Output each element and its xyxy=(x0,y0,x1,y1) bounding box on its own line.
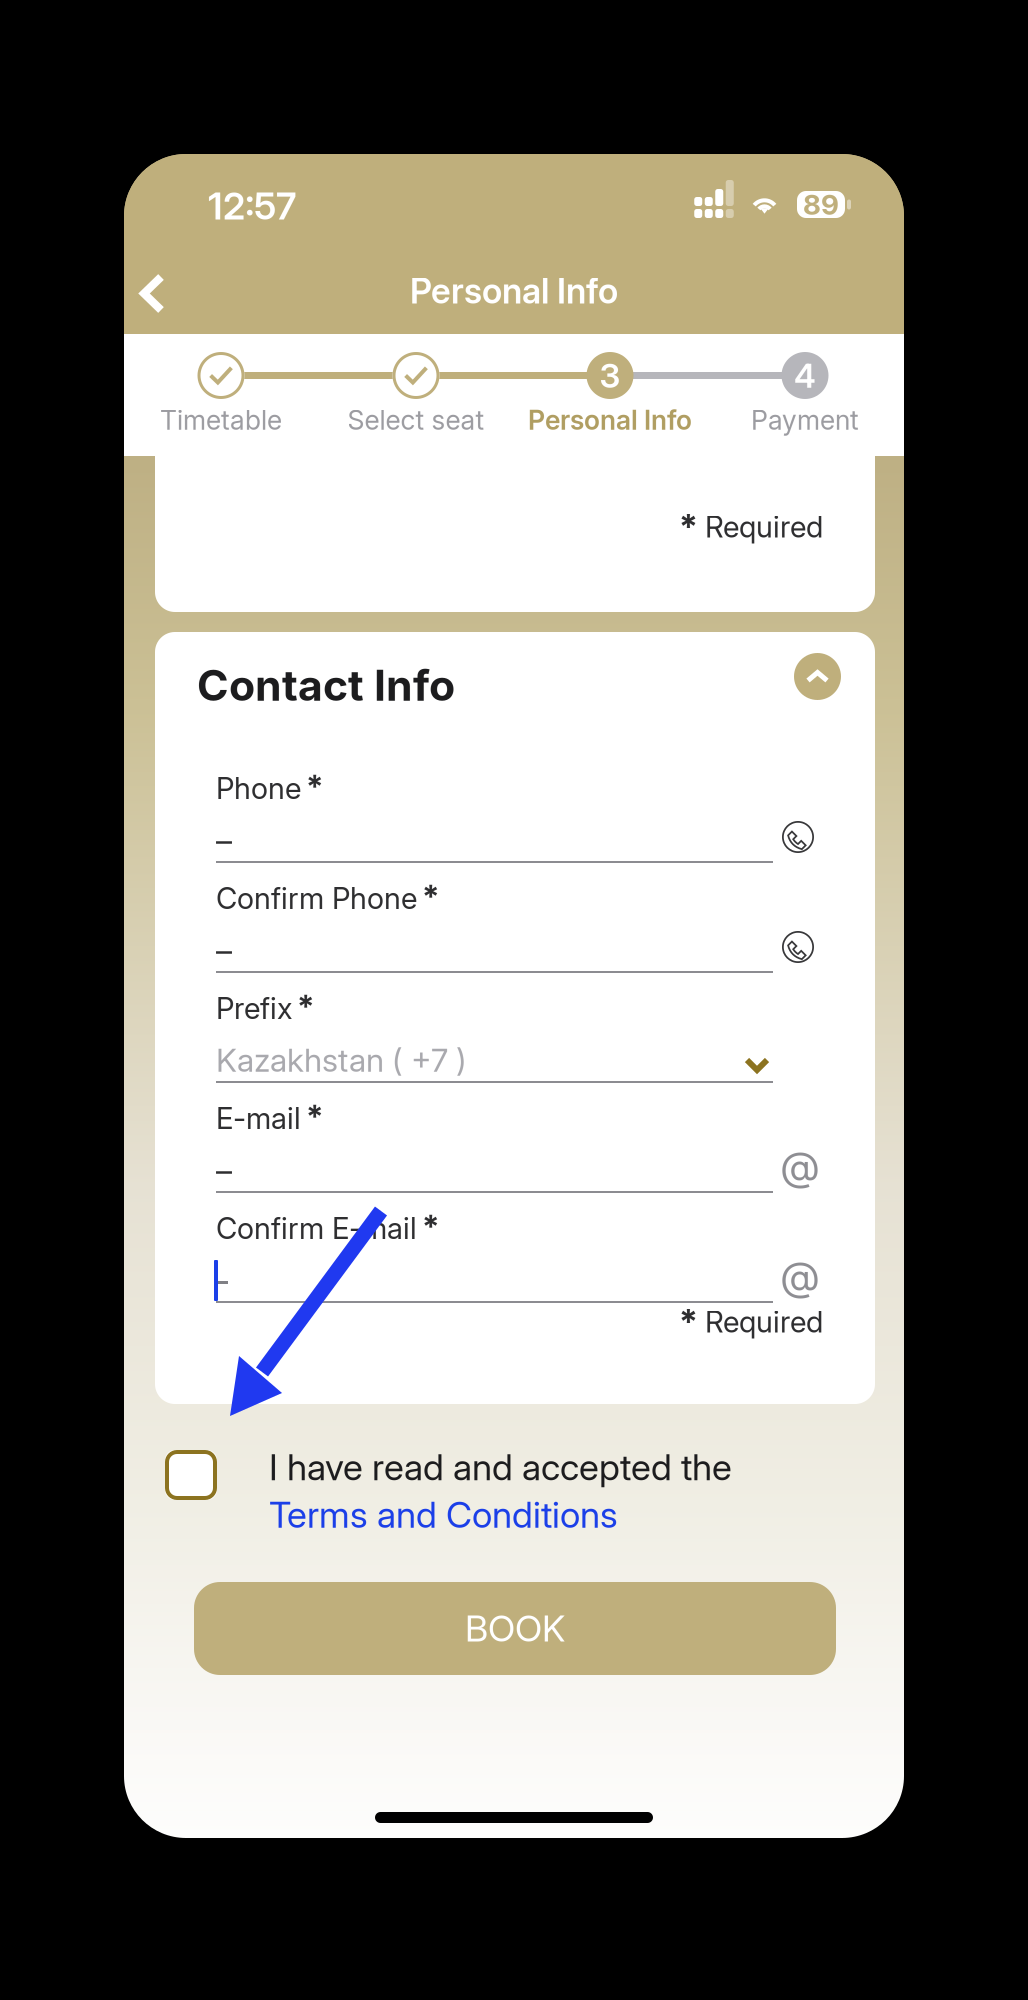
staticText: Select seat xyxy=(347,404,484,436)
staticText: Confirm Phone xyxy=(216,881,417,916)
staticText: Contact Info xyxy=(197,660,455,710)
button[interactable]: Back xyxy=(116,257,189,330)
staticText: * xyxy=(679,507,698,547)
staticText: * xyxy=(679,1302,698,1342)
staticText: BOOK xyxy=(465,1607,565,1650)
staticText: I have read and accepted the xyxy=(269,1446,732,1488)
staticText: 3 xyxy=(599,356,620,395)
staticText: Phone xyxy=(216,771,301,806)
staticText: – xyxy=(216,1151,232,1189)
staticText: Kazakhstan ( +7 ) xyxy=(216,1041,467,1079)
staticText: – xyxy=(216,821,232,859)
staticText: Required xyxy=(705,510,823,544)
staticText: Terms and Conditions xyxy=(269,1493,618,1536)
staticText: * xyxy=(306,767,323,805)
button[interactable]: Collapse Contact Info xyxy=(794,653,841,700)
staticText: * xyxy=(306,1097,323,1135)
staticText: @ xyxy=(780,1252,819,1300)
staticText: Timetable xyxy=(160,404,282,436)
staticText: Prefix xyxy=(216,991,292,1026)
staticText: Personal Info xyxy=(410,271,618,311)
staticText: 12:57 xyxy=(208,184,296,228)
staticText: 4 xyxy=(794,356,816,395)
button[interactable]: I have read and accepted the xyxy=(165,1450,825,1550)
staticText: Required xyxy=(705,1305,823,1339)
staticText: @ xyxy=(780,1142,819,1190)
button[interactable]: BOOK xyxy=(194,1582,836,1675)
staticText: 89 xyxy=(803,188,839,221)
staticText: Personal Info xyxy=(528,404,692,436)
staticText: * xyxy=(297,987,314,1025)
staticText: * xyxy=(422,1207,439,1245)
staticText: – xyxy=(216,931,232,969)
staticText: * xyxy=(422,877,439,915)
staticText: Payment xyxy=(751,404,859,436)
staticText: Confirm E-mail xyxy=(216,1211,417,1246)
staticText: E-mail xyxy=(216,1101,301,1136)
